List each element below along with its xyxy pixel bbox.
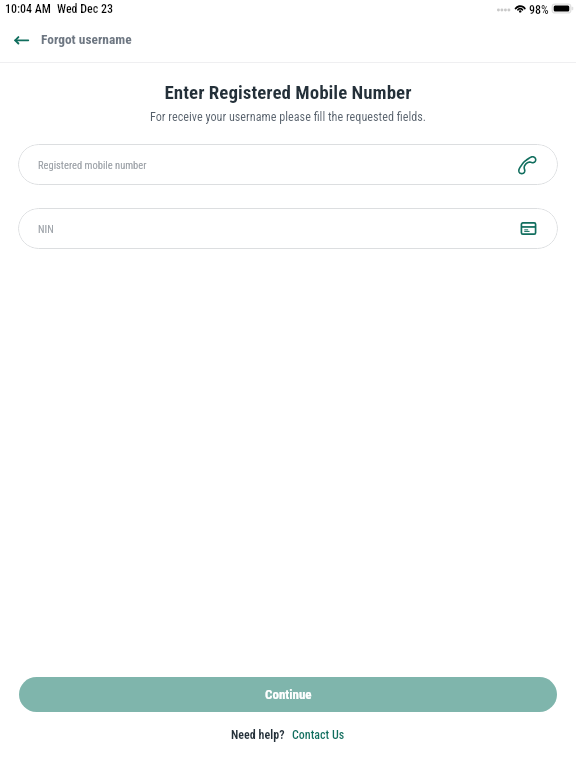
staticText: Wed Dec 23 bbox=[57, 2, 114, 16]
staticText: 10:04 AM bbox=[5, 2, 51, 16]
button[interactable]: Continue bbox=[19, 677, 557, 712]
staticText: Need help? bbox=[231, 728, 285, 742]
staticText: Enter Registered Mobile Number bbox=[0, 81, 576, 103]
staticText: 98% bbox=[529, 3, 549, 17]
button[interactable]: Back bbox=[7, 26, 36, 55]
button[interactable]: NIN bbox=[18, 208, 558, 249]
staticText: Continue bbox=[265, 687, 312, 702]
button[interactable]: Registered mobile number bbox=[18, 144, 558, 185]
staticText: For receive your username please fill th… bbox=[0, 110, 576, 124]
staticText: Forgot username bbox=[41, 32, 132, 48]
button[interactable]: Contact Us bbox=[292, 728, 345, 742]
staticText: Contact Us bbox=[292, 728, 345, 742]
staticText: NIN bbox=[38, 223, 520, 235]
staticText: Registered mobile number bbox=[38, 159, 512, 171]
